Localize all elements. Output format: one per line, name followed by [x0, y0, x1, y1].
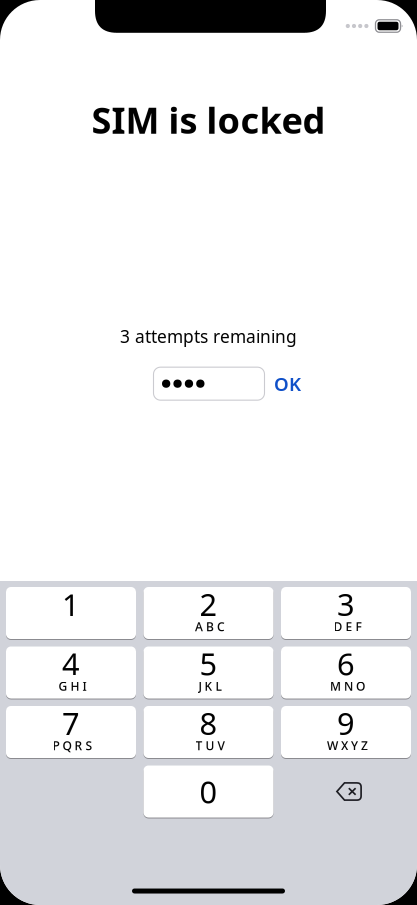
staticText: 9 [337, 703, 355, 743]
button[interactable]: 2 [143, 587, 273, 639]
button[interactable]: 0 [143, 765, 273, 817]
staticText: 1 [62, 584, 80, 625]
staticText: 5 [199, 643, 217, 684]
button[interactable]: 6 [281, 646, 411, 698]
staticText: PQRS [52, 737, 92, 753]
staticText: TUV [195, 737, 224, 753]
staticText: 6 [337, 643, 355, 684]
staticText: 8 [199, 703, 217, 743]
staticText: 7 [62, 703, 80, 743]
button[interactable]: 7 [6, 706, 136, 758]
staticText: 3 attempts remaining [120, 325, 297, 348]
staticText: GHI [58, 678, 86, 694]
button[interactable]: 5 [143, 646, 273, 698]
staticText: WXYZ [327, 737, 368, 753]
staticText: OK [274, 371, 301, 396]
staticText: JKL [198, 678, 221, 694]
staticText: 0 [199, 771, 217, 812]
button[interactable]: 3 [281, 587, 411, 639]
button[interactable]: 4 [6, 646, 136, 698]
staticText: 2 [199, 584, 217, 624]
staticText: DEF [333, 618, 361, 634]
button[interactable]: OK [264, 367, 310, 400]
staticText: SIM is locked [91, 96, 325, 144]
staticText: ABC [195, 618, 225, 634]
button[interactable]: Delete [281, 765, 411, 817]
staticText: 3 [337, 584, 355, 624]
staticText: MNO [330, 678, 365, 694]
button[interactable]: 9 [281, 706, 411, 758]
button[interactable]: 8 [143, 706, 273, 758]
staticText: 4 [62, 643, 80, 684]
button[interactable]: 1 [6, 587, 136, 639]
